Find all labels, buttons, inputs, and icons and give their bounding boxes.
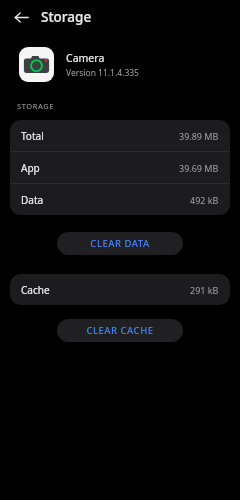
staticText: Camera [66,51,105,65]
staticText: Storage [41,8,92,26]
button[interactable]: App [10,152,230,183]
staticText: 291 kB [190,284,219,296]
staticText: Total [21,129,44,143]
button[interactable]: Data [10,184,230,215]
staticText: CLEAR DATA [90,237,150,250]
button[interactable]: CLEAR DATA [57,232,183,255]
staticText: 492 kB [190,194,219,206]
staticText: 39.89 MB [179,130,219,142]
staticText: CLEAR CACHE [86,324,154,337]
button[interactable]: CLEAR CACHE [57,319,183,342]
staticText: Data [21,193,44,207]
staticText: 39.69 MB [179,162,219,174]
staticText: App [21,161,40,175]
staticText: Version 11.1.4.335 [66,67,139,79]
button[interactable]: Total [10,120,230,151]
staticText: Cache [21,283,50,297]
button[interactable]: Back [7,3,35,31]
button[interactable]: Cache [10,274,230,305]
staticText: STORAGE [17,101,55,111]
